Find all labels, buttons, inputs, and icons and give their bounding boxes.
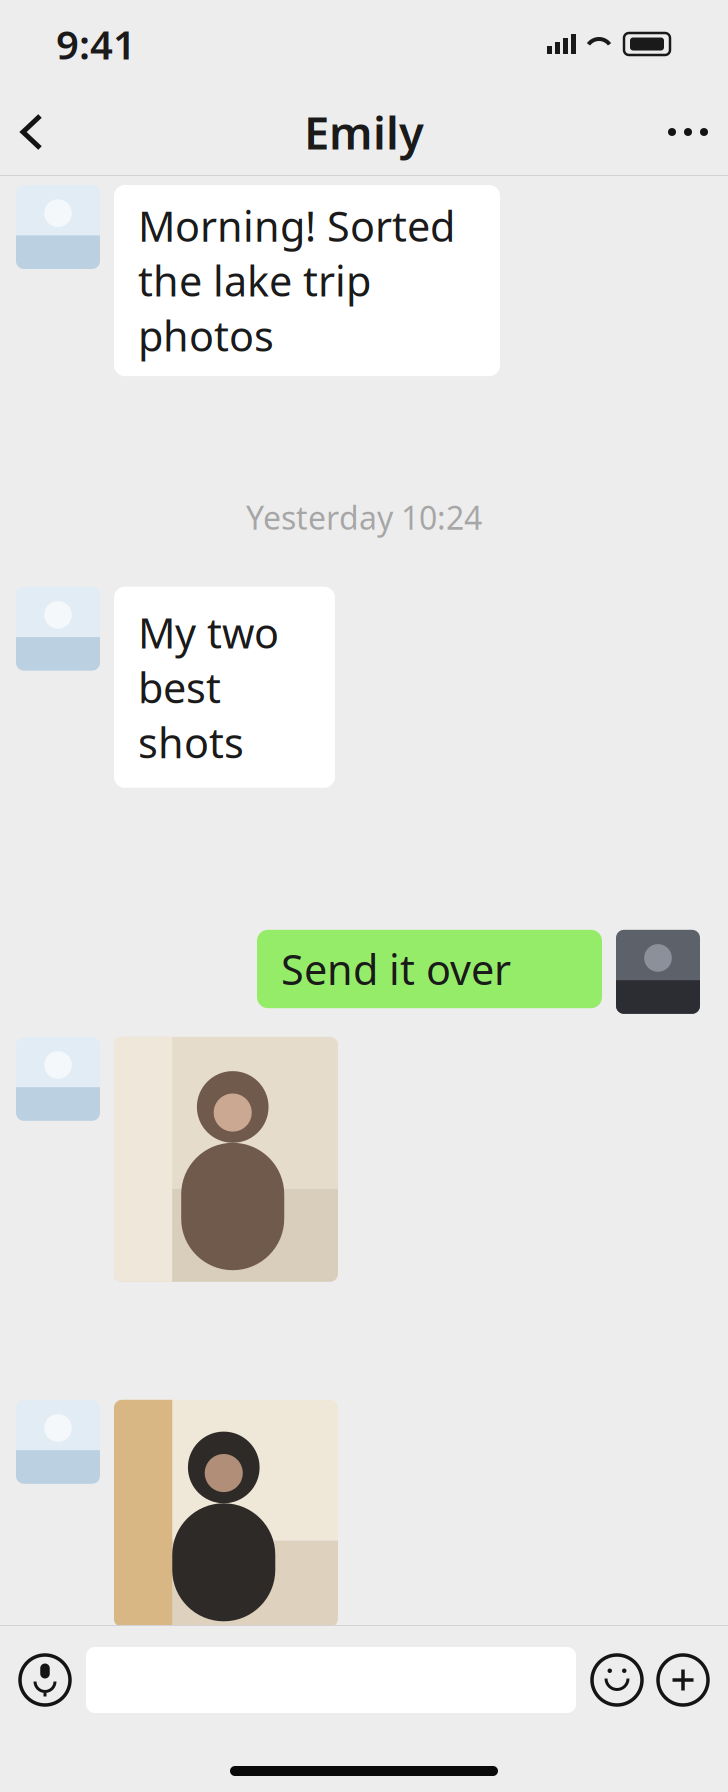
button[interactable]: Back	[20, 92, 100, 172]
staticText: My two best shots	[138, 605, 279, 770]
button[interactable]: More options	[658, 1655, 708, 1705]
staticText: Yesterday 10:24	[246, 496, 482, 539]
staticText: Send it over	[281, 942, 511, 996]
button[interactable]: More	[628, 92, 708, 172]
button[interactable]: Voice message	[20, 1655, 70, 1705]
staticText: 9:41	[56, 17, 136, 70]
staticText: Morning! Sorted the lake trip photos	[138, 198, 455, 363]
staticText: Emily	[304, 102, 424, 162]
button[interactable]: Emoji	[592, 1655, 642, 1705]
